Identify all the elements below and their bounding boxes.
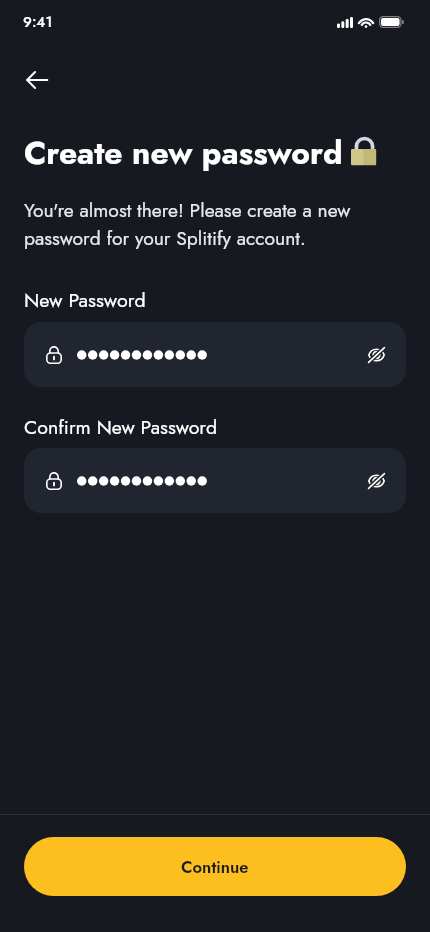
staticText: You're almost there! Please create a new…	[24, 196, 364, 252]
staticText: Create new password	[24, 130, 343, 176]
button[interactable]: Show password	[24, 322, 406, 387]
button[interactable]: Continue	[24, 837, 406, 896]
staticText: 9:41	[23, 11, 53, 32]
staticText: Confirm New Password	[24, 413, 218, 441]
staticText: New Password	[24, 286, 146, 314]
button[interactable]: Show password	[24, 448, 406, 513]
button[interactable]: Back	[13, 56, 61, 104]
button[interactable]: Show password	[359, 464, 393, 498]
button[interactable]: Show password	[359, 338, 393, 372]
staticText: Continue	[181, 855, 249, 879]
